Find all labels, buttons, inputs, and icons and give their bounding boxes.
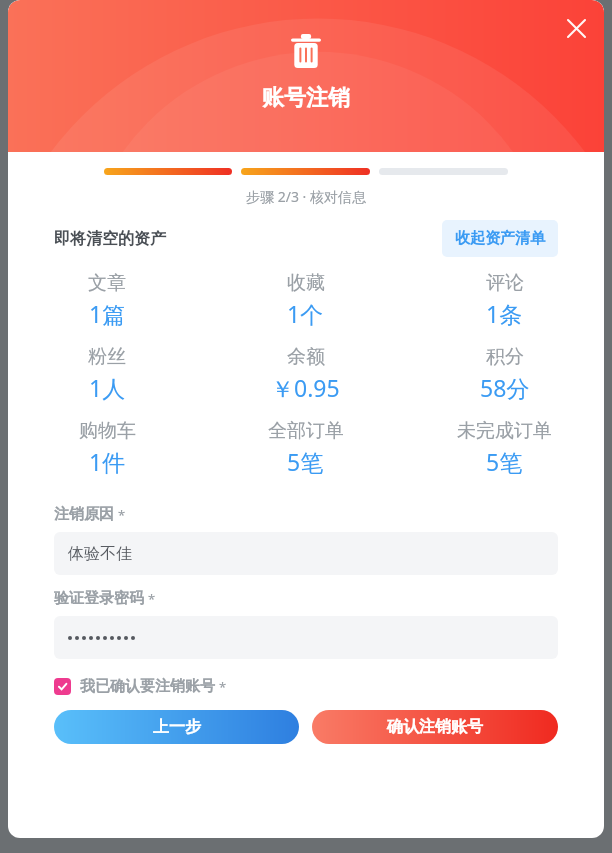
staticText: 收起资产清单 <box>455 229 545 248</box>
staticText: 1人 <box>89 372 126 403</box>
staticText: 验证登录密码 <box>54 589 144 608</box>
staticText: ￥0.95 <box>271 372 340 403</box>
staticText: 我已确认要注销账号 <box>80 677 215 696</box>
button[interactable]: 上一步 <box>54 710 299 744</box>
staticText: 账号注销 <box>262 84 350 112</box>
staticText: 上一步 <box>153 717 201 737</box>
staticText: 粉丝 <box>88 345 126 369</box>
staticText: 文章 <box>88 271 126 295</box>
staticText: 5笔 <box>486 446 523 477</box>
staticText: 余额 <box>287 345 325 369</box>
staticText: 购物车 <box>79 419 136 443</box>
staticText: 体验不佳 <box>68 544 132 564</box>
staticText: 注销原因 <box>54 505 114 524</box>
staticText: * <box>219 678 227 696</box>
button[interactable]: 体验不佳 <box>54 532 558 575</box>
staticText: 确认注销账号 <box>387 717 483 737</box>
button[interactable]: 我已确认要注销账号 <box>54 677 227 696</box>
staticText: 步骤 2/3 · 核对信息 <box>8 187 604 206</box>
staticText: 1篇 <box>89 298 126 329</box>
staticText: * <box>148 590 156 608</box>
staticText: 全部订单 <box>268 419 344 443</box>
button[interactable]: 确认注销账号 <box>312 710 558 744</box>
staticText: 1件 <box>89 446 126 477</box>
staticText: 1条 <box>486 298 523 329</box>
staticText: 未完成订单 <box>457 419 552 443</box>
staticText: 评论 <box>486 271 524 295</box>
staticText: 收藏 <box>287 271 325 295</box>
staticText: 即将清空的资产 <box>54 229 166 249</box>
staticText: 58分 <box>480 372 530 403</box>
staticText: 5笔 <box>287 446 324 477</box>
button[interactable]: 收起资产清单 <box>442 220 558 257</box>
staticText: 1个 <box>287 298 324 329</box>
button[interactable]: Close <box>558 10 594 46</box>
staticText: * <box>118 506 126 524</box>
staticText: 积分 <box>486 345 524 369</box>
button[interactable] <box>54 616 558 659</box>
